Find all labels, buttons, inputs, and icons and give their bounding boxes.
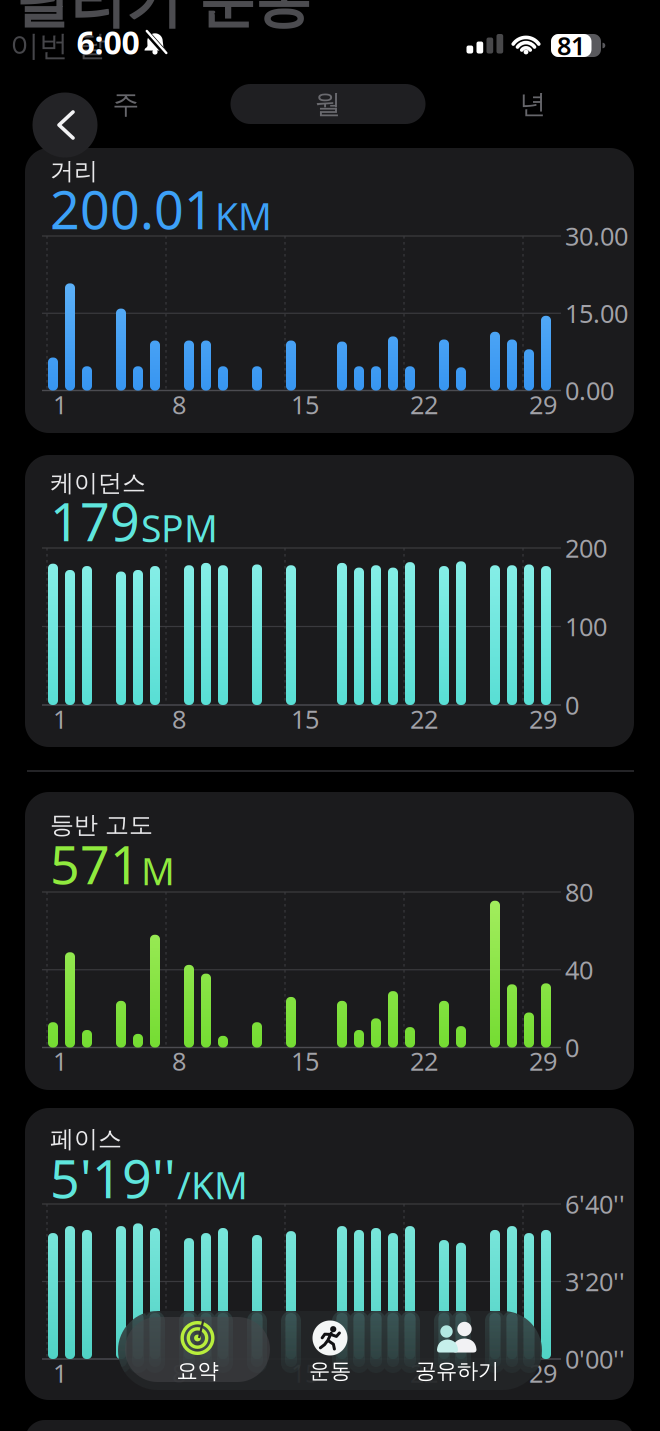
staticText: 200 xyxy=(565,531,607,565)
staticText: 179 xyxy=(50,486,140,556)
staticText: 페이스 xyxy=(50,1124,122,1154)
staticText: 달리기 운동 xyxy=(14,0,311,36)
staticText: 케이던스 xyxy=(50,468,146,498)
staticText: 200.01 xyxy=(50,174,214,244)
staticText: 5'19'' xyxy=(50,1143,176,1213)
staticText: 80 xyxy=(565,875,593,909)
staticText: 29 xyxy=(529,1044,557,1078)
staticText: 8 xyxy=(172,1044,186,1078)
button[interactable]: 운동 xyxy=(270,1317,390,1382)
staticText: 40 xyxy=(565,953,593,986)
staticText: 15 xyxy=(291,1044,319,1078)
staticText: SPM xyxy=(141,503,218,552)
button[interactable]: 년 xyxy=(443,84,623,124)
staticText: 운동 xyxy=(309,1358,351,1384)
staticText: 3'20'' xyxy=(565,1265,625,1298)
staticText: 년 xyxy=(519,88,546,120)
staticText: 29 xyxy=(529,1356,557,1390)
staticText: 1 xyxy=(53,1356,67,1390)
staticText: 주 xyxy=(112,88,139,120)
staticText: 1 xyxy=(53,388,67,421)
staticText: 22 xyxy=(410,702,438,736)
staticText: 1 xyxy=(53,1044,67,1078)
button[interactable] xyxy=(32,92,97,157)
staticText: 29 xyxy=(529,702,557,736)
staticText: 15.00 xyxy=(565,296,628,330)
staticText: 8 xyxy=(172,388,186,421)
staticText: 8 xyxy=(172,1356,186,1390)
staticText: 6'40'' xyxy=(565,1187,625,1221)
staticText: 22 xyxy=(410,1356,438,1390)
staticText: 0.00 xyxy=(565,374,614,407)
button[interactable]: 공유하기 xyxy=(392,1317,522,1382)
staticText: 공유하기 xyxy=(415,1358,499,1384)
staticText: 81 xyxy=(557,29,585,62)
staticText: 0 xyxy=(565,1031,579,1064)
staticText: 월 xyxy=(314,88,341,120)
staticText: 요약 xyxy=(176,1358,218,1384)
staticText: 1 xyxy=(53,702,67,736)
staticText: 이번 달 xyxy=(10,28,106,64)
staticText: /KM xyxy=(177,1160,248,1209)
button[interactable]: 월 xyxy=(230,84,425,124)
staticText: 30.00 xyxy=(565,219,628,253)
staticText: 22 xyxy=(410,388,438,421)
staticText: 등반 고도 xyxy=(50,810,153,840)
staticText: 거리 xyxy=(50,156,98,186)
staticText: M xyxy=(141,846,175,895)
staticText: 15 xyxy=(291,1356,319,1390)
staticText: 0 xyxy=(565,688,579,722)
staticText: 15 xyxy=(291,388,319,421)
staticText: 8 xyxy=(172,702,186,736)
button[interactable]: 요약 xyxy=(125,1317,270,1382)
staticText: 0'00'' xyxy=(565,1342,625,1376)
button[interactable]: 주 xyxy=(36,84,216,124)
staticText: 29 xyxy=(529,388,557,421)
staticText: 6:00 xyxy=(76,21,139,63)
staticText: 22 xyxy=(410,1044,438,1078)
staticText: 15 xyxy=(291,702,319,736)
staticText: 100 xyxy=(565,610,607,643)
staticText: KM xyxy=(215,191,272,240)
staticText: 571 xyxy=(50,829,140,899)
